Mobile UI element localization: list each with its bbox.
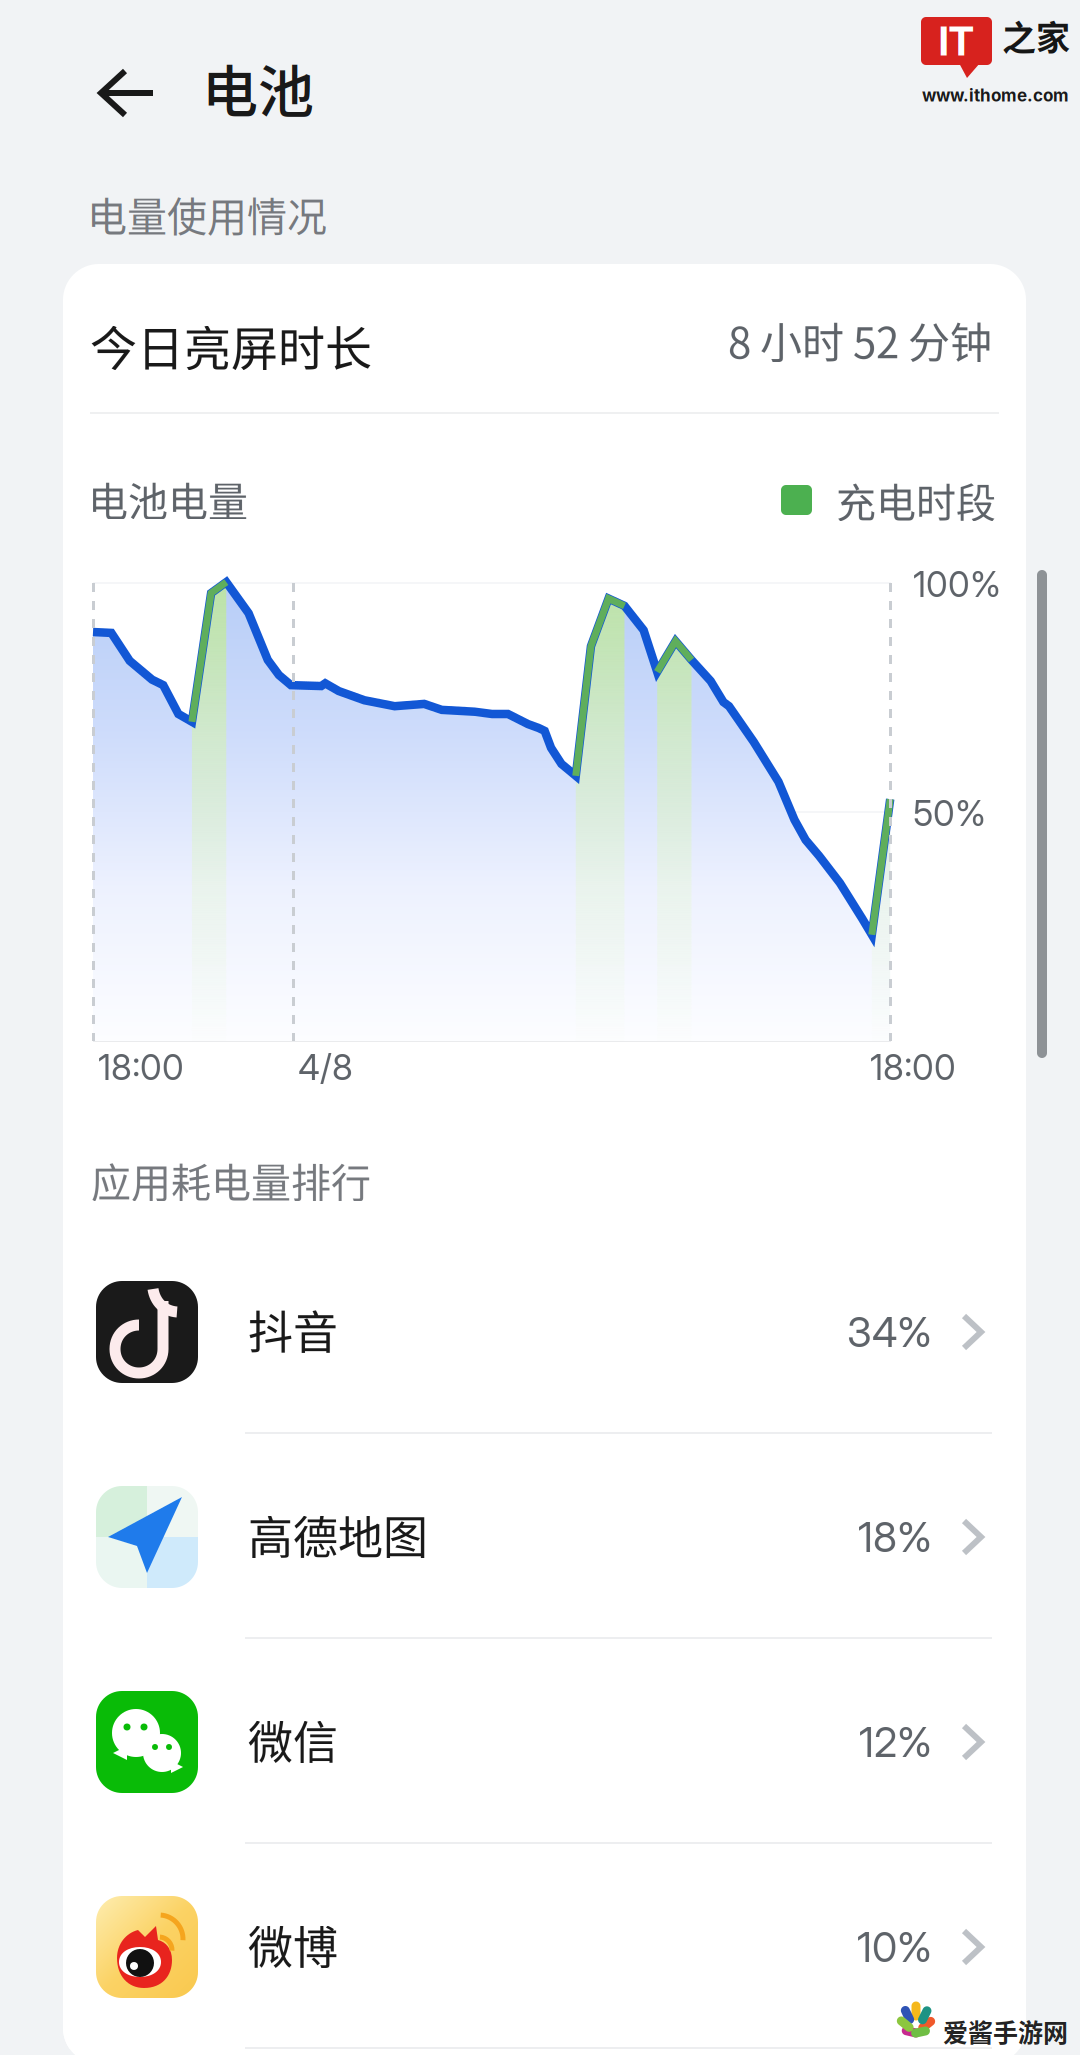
staticText: 18:00 xyxy=(870,1046,956,1088)
staticText: 50% xyxy=(913,792,986,834)
staticText: 18% xyxy=(858,1512,932,1562)
staticText: 高德地图 xyxy=(248,1502,428,1567)
button[interactable]: 微博 xyxy=(63,1844,1026,2047)
staticText: 34% xyxy=(847,1307,932,1357)
staticText: 100% xyxy=(913,563,1001,605)
staticText: 12% xyxy=(859,1717,932,1767)
staticText: 18:00 xyxy=(98,1046,184,1088)
staticText: 4/8 xyxy=(298,1046,353,1088)
staticText: 电量使用情况 xyxy=(87,185,327,243)
staticText: 电池 xyxy=(202,47,314,128)
button[interactable]: 微信 xyxy=(63,1639,1026,1842)
staticText: 抖音 xyxy=(248,1297,338,1362)
staticText: IT xyxy=(938,17,974,65)
staticText: 8 小时 52 分钟 xyxy=(728,310,992,370)
staticText: www.ithome.com xyxy=(922,85,1069,106)
staticText: 微博 xyxy=(248,1912,338,1977)
staticText: 爱酱手游网 xyxy=(943,2013,1068,2049)
staticText: 电池电量 xyxy=(88,470,248,528)
staticText: 微信 xyxy=(248,1707,338,1772)
staticText: 今日亮屏时长 xyxy=(90,311,372,379)
button[interactable]: Back xyxy=(68,38,186,148)
staticText: 充电时段 xyxy=(836,471,996,529)
button[interactable]: 抖音 xyxy=(63,1229,1026,1432)
button[interactable]: 高德地图 xyxy=(63,1434,1026,1637)
staticText: 应用耗电量排行 xyxy=(91,1151,371,1209)
staticText: 之家 xyxy=(1002,11,1070,60)
staticText: 10% xyxy=(857,1922,932,1972)
